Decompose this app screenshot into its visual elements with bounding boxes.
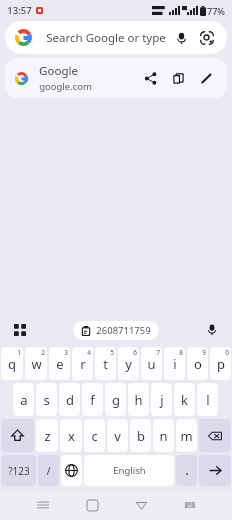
button[interactable]: Change language — [61, 455, 82, 486]
staticText: a — [20, 391, 28, 409]
button[interactable]: Recents — [29, 491, 57, 519]
button[interactable]: x — [60, 419, 82, 452]
button[interactable]: Backspace — [199, 419, 231, 452]
button[interactable]: m — [176, 419, 197, 452]
button[interactable]: f — [82, 383, 103, 416]
button[interactable]: e — [49, 347, 70, 380]
button[interactable]: Google Lens — [197, 28, 217, 48]
button[interactable]: u — [141, 347, 162, 380]
button[interactable]: d — [59, 383, 80, 416]
button[interactable]: Home — [78, 491, 106, 519]
button[interactable]: q — [1, 347, 23, 380]
button[interactable]: h — [128, 383, 149, 416]
staticText: x — [68, 427, 75, 445]
staticText: r — [80, 355, 86, 373]
staticText: k — [181, 391, 188, 409]
staticText: 7 — [156, 348, 160, 357]
button[interactable]: Search Google or type UF — [5, 21, 227, 54]
staticText: 77% — [207, 5, 225, 17]
staticText: g — [112, 391, 120, 409]
staticText: . — [185, 463, 189, 478]
staticText: google.com — [39, 80, 92, 93]
staticText: f — [90, 391, 95, 409]
staticText: English — [113, 464, 146, 477]
button[interactable]: Enter — [199, 455, 231, 486]
staticText: h — [134, 391, 143, 409]
staticText: 2608711759 — [96, 324, 151, 337]
button[interactable]: k — [174, 383, 195, 416]
staticText: ?123 — [8, 464, 30, 478]
button[interactable]: w — [25, 347, 47, 380]
button[interactable]: Shift — [1, 419, 34, 452]
staticText: o — [194, 355, 202, 373]
staticText: / — [46, 463, 51, 478]
button[interactable]: l — [197, 383, 218, 416]
button[interactable]: v — [107, 419, 128, 452]
button[interactable]: Edit — [195, 67, 217, 89]
staticText: e — [56, 355, 64, 373]
button[interactable]: Copy — [167, 67, 189, 89]
button[interactable]: English — [84, 455, 174, 486]
button[interactable]: r — [72, 347, 93, 380]
staticText: j — [160, 391, 164, 409]
button[interactable]: b — [130, 419, 151, 452]
button[interactable]: Google — [5, 58, 227, 98]
staticText: v — [114, 427, 121, 445]
staticText: s — [43, 391, 50, 409]
button[interactable]: Voice search — [171, 28, 191, 48]
staticText: l — [206, 391, 210, 409]
staticText: y — [125, 355, 132, 373]
button[interactable]: p — [210, 347, 231, 380]
button[interactable]: t — [95, 347, 116, 380]
staticText: Google — [39, 63, 78, 79]
button[interactable]: j — [151, 383, 172, 416]
button[interactable]: 2608711759 — [73, 321, 159, 340]
staticText: w — [31, 355, 42, 373]
staticText: c — [91, 427, 98, 445]
button[interactable]: s — [36, 383, 57, 416]
staticText: b — [137, 427, 145, 445]
staticText: z — [44, 427, 51, 445]
staticText: 2 — [41, 348, 45, 357]
button[interactable]: a — [13, 383, 34, 416]
staticText: 1 — [17, 348, 21, 357]
button[interactable]: y — [118, 347, 139, 380]
staticText: q — [8, 355, 16, 373]
staticText: m — [180, 427, 193, 445]
staticText: 3 — [64, 348, 68, 357]
button[interactable]: Back — [127, 491, 155, 519]
staticText: t — [103, 355, 108, 373]
button[interactable]: n — [153, 419, 174, 452]
button[interactable]: Hide keyboard — [176, 491, 204, 519]
button[interactable]: . — [176, 455, 197, 486]
staticText: Search Google or type UF — [41, 30, 171, 46]
staticText: 13:57 — [7, 4, 32, 17]
button[interactable]: / — [38, 455, 59, 486]
button[interactable]: z — [36, 419, 58, 452]
staticText: 4 — [87, 348, 91, 357]
button[interactable]: ?123 — [1, 455, 36, 486]
staticText: i — [173, 355, 177, 373]
button[interactable]: o — [187, 347, 208, 380]
staticText: d — [66, 391, 74, 409]
button[interactable]: Share — [139, 67, 161, 89]
staticText: 8 — [179, 348, 183, 357]
staticText: 0 — [225, 348, 229, 357]
button[interactable]: c — [84, 419, 105, 452]
staticText: 6 — [133, 348, 137, 357]
button[interactable]: g — [105, 383, 126, 416]
staticText: 9 — [202, 348, 206, 357]
staticText: u — [147, 355, 156, 373]
staticText: 5 — [110, 348, 114, 357]
staticText: p — [217, 355, 225, 373]
button[interactable]: Voice input — [200, 318, 224, 342]
button[interactable]: i — [164, 347, 185, 380]
button[interactable]: Keyboard options — [8, 318, 32, 342]
staticText: n — [159, 427, 168, 445]
